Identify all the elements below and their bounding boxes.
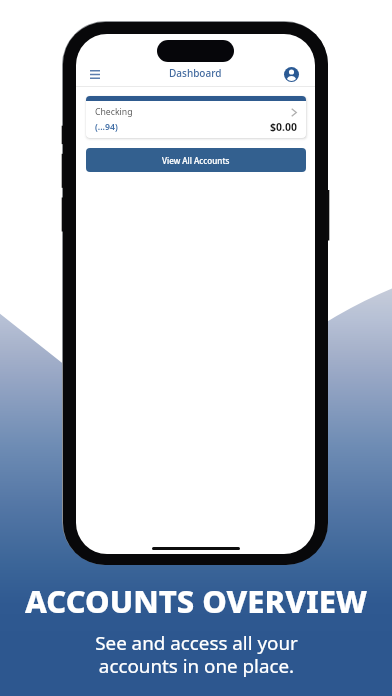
staticText: View All Accounts — [162, 155, 230, 166]
button[interactable]: Account — [281, 64, 302, 85]
staticText: (...94) — [95, 121, 118, 133]
staticText: Checking — [95, 106, 133, 118]
button[interactable]: Checking — [86, 96, 306, 138]
staticText: ACCOUNTS OVERVIEW — [25, 580, 367, 622]
staticText: See and access all your accounts in one … — [95, 630, 298, 679]
button[interactable]: Menu — [85, 64, 105, 84]
staticText: $0.00 — [270, 120, 297, 134]
button[interactable]: View All Accounts — [86, 148, 306, 172]
staticText: Dashboard — [169, 66, 222, 80]
